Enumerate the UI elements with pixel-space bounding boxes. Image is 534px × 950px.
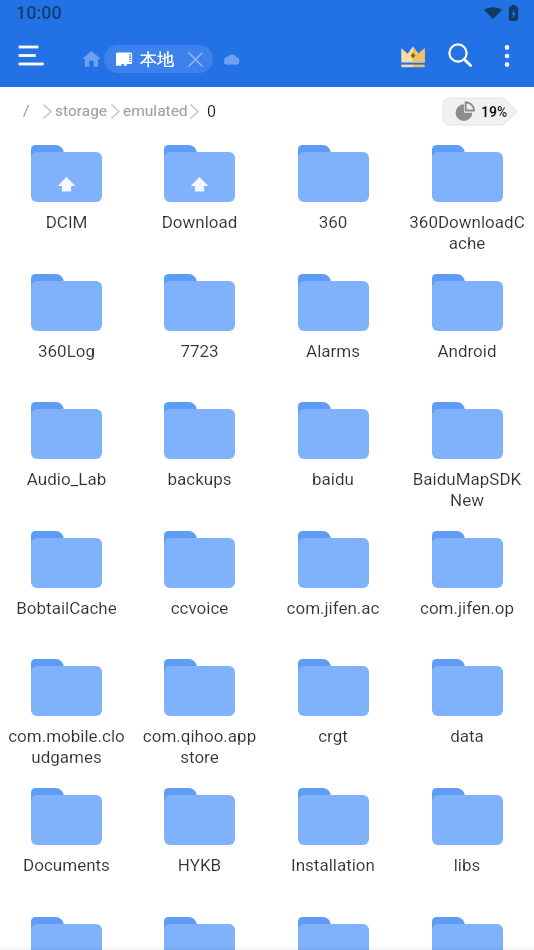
- staticText: DCIM: [7, 212, 126, 232]
- staticText: Installation: [273, 855, 393, 875]
- button[interactable]: data: [400, 649, 534, 778]
- staticText: Audio_Lab: [7, 469, 126, 489]
- button[interactable]: Movies: [0, 907, 133, 950]
- staticText: com.qihoo.appstore: [140, 726, 259, 767]
- staticText: Alarms: [273, 341, 393, 361]
- button[interactable]: BaiduMapSDKNew: [400, 392, 534, 521]
- button[interactable]: 360DownloadCache: [400, 135, 534, 264]
- button[interactable]: Download: [133, 135, 266, 264]
- button[interactable]: libs: [400, 778, 534, 907]
- staticText: HYKB: [140, 855, 259, 875]
- staticText: 360Log: [7, 341, 126, 361]
- staticText: BaiduMapSDKNew: [407, 469, 527, 510]
- staticText: 7723: [140, 341, 259, 361]
- staticText: Download: [140, 212, 259, 232]
- button[interactable]: Android: [400, 264, 534, 393]
- button[interactable]: 360Log: [0, 264, 133, 393]
- staticText: com.mobile.cloudgames: [7, 726, 126, 767]
- staticText: com.jifen.op: [407, 598, 527, 618]
- button[interactable]: Pictures: [400, 907, 534, 950]
- staticText: data: [407, 726, 527, 746]
- button[interactable]: com.jifen.op: [400, 521, 534, 650]
- button[interactable]: 0: [207, 102, 216, 121]
- button[interactable]: HYKB: [133, 778, 266, 907]
- button[interactable]: Search: [439, 34, 483, 78]
- staticText: libs: [407, 855, 527, 875]
- button[interactable]: DCIM: [0, 135, 133, 264]
- button[interactable]: Documents: [0, 778, 133, 907]
- button[interactable]: ccvoice: [133, 521, 266, 650]
- staticText: BobtailCache: [7, 598, 126, 618]
- button[interactable]: backups: [133, 392, 266, 521]
- button[interactable]: com.mobile.cloudgames: [0, 649, 133, 778]
- button[interactable]: Audio_Lab: [0, 392, 133, 521]
- staticText: 360: [273, 212, 393, 232]
- button[interactable]: 7723: [133, 264, 266, 393]
- button[interactable]: baidu: [266, 392, 400, 521]
- staticText: 10:00: [16, 2, 62, 23]
- button[interactable]: storage: [55, 102, 108, 120]
- button[interactable]: /: [23, 102, 30, 120]
- button[interactable]: crgt: [266, 649, 400, 778]
- button[interactable]: More options: [485, 34, 529, 78]
- staticText: 19%: [481, 104, 508, 120]
- button[interactable]: com.qihoo.appstore: [133, 649, 266, 778]
- staticText: crgt: [273, 726, 393, 746]
- button[interactable]: emulated: [123, 102, 188, 120]
- button[interactable]: 本地: [104, 45, 213, 73]
- button[interactable]: Menu: [4, 33, 52, 81]
- staticText: com.jifen.ac: [273, 598, 393, 618]
- staticText: 本地: [140, 49, 174, 70]
- staticText: Documents: [7, 855, 126, 875]
- button[interactable]: Premium: [392, 36, 434, 78]
- button[interactable]: Installation: [266, 778, 400, 907]
- staticText: Android: [407, 341, 527, 361]
- button[interactable]: Alarms: [266, 264, 400, 393]
- button[interactable]: 360: [266, 135, 400, 264]
- button[interactable]: com.jifen.ac: [266, 521, 400, 650]
- staticText: backups: [140, 469, 259, 489]
- button[interactable]: BobtailCache: [0, 521, 133, 650]
- staticText: ccvoice: [140, 598, 259, 618]
- staticText: 360DownloadCache: [407, 212, 527, 253]
- button[interactable]: Home: [76, 44, 106, 72]
- button[interactable]: Music: [133, 907, 266, 950]
- button[interactable]: Cloud storage: [218, 45, 244, 73]
- button[interactable]: Notifications: [266, 907, 400, 950]
- button[interactable]: Close tab: [185, 49, 205, 69]
- button[interactable]: Storage 19 percent used: [443, 98, 517, 125]
- staticText: baidu: [273, 469, 393, 489]
